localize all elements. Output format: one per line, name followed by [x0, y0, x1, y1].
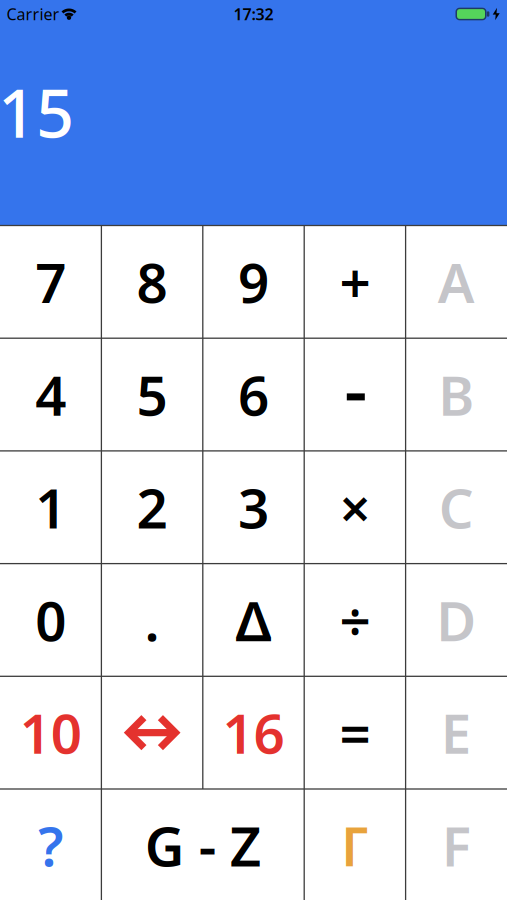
button[interactable]: 1	[1, 452, 100, 563]
staticText: 10	[20, 696, 82, 769]
staticText: 1	[35, 471, 66, 544]
staticText: 8	[137, 246, 168, 318]
button[interactable]: 4	[1, 339, 100, 450]
staticText: E	[441, 696, 472, 769]
staticText: 6	[238, 358, 269, 431]
button[interactable]: 10	[1, 677, 100, 788]
staticText: ×	[339, 471, 370, 544]
staticText: 2	[137, 471, 168, 544]
button[interactable]: =	[305, 677, 405, 788]
staticText: +	[339, 246, 370, 318]
button[interactable]: 3	[204, 452, 303, 563]
button[interactable]: 9	[204, 226, 303, 337]
button[interactable]: G - Z	[102, 790, 303, 900]
button[interactable]: .	[102, 565, 202, 675]
button[interactable]: 6	[204, 339, 303, 450]
staticText: B	[438, 358, 474, 431]
button[interactable]: 2	[102, 452, 202, 563]
staticText: 0	[35, 584, 66, 656]
staticText: F	[442, 809, 471, 882]
button[interactable]: ?	[1, 790, 100, 900]
button[interactable]: ×	[305, 452, 405, 563]
staticText: 3	[238, 471, 269, 544]
staticText: G - Z	[145, 809, 261, 882]
button[interactable]: F	[407, 790, 506, 900]
button[interactable]: 8	[102, 226, 202, 337]
button[interactable]: D	[407, 565, 506, 675]
button[interactable]: C	[407, 452, 506, 563]
staticText: 7	[35, 246, 66, 318]
staticText: .	[145, 584, 160, 656]
button[interactable]: B	[407, 339, 506, 450]
button[interactable]: Δ	[204, 565, 303, 675]
staticText: C	[439, 471, 474, 544]
staticText: Γ	[341, 809, 369, 882]
staticText: =	[339, 696, 370, 769]
button[interactable]: Γ	[305, 790, 405, 900]
button[interactable]: 5	[102, 339, 202, 450]
staticText: 9	[238, 246, 269, 318]
button[interactable]: 0	[1, 565, 100, 675]
staticText: Carrier	[6, 3, 59, 25]
staticText: ?	[38, 809, 63, 882]
staticText: 17:32	[233, 3, 273, 25]
button[interactable]: Subtract	[305, 339, 405, 450]
staticText: D	[436, 584, 476, 656]
button[interactable]: +	[305, 226, 405, 337]
button[interactable]: ÷	[305, 565, 405, 675]
staticText: A	[438, 246, 475, 318]
staticText: ÷	[339, 584, 370, 656]
staticText: 16	[222, 696, 284, 769]
staticText: 15	[0, 68, 74, 156]
staticText: 5	[137, 358, 168, 431]
button[interactable]: 7	[1, 226, 100, 337]
button[interactable]: Swap bases	[102, 677, 202, 788]
button[interactable]: 16	[204, 677, 303, 788]
button[interactable]: A	[407, 226, 506, 337]
button[interactable]: E	[407, 677, 506, 788]
staticText: 4	[35, 358, 66, 431]
staticText: Δ	[235, 584, 271, 656]
